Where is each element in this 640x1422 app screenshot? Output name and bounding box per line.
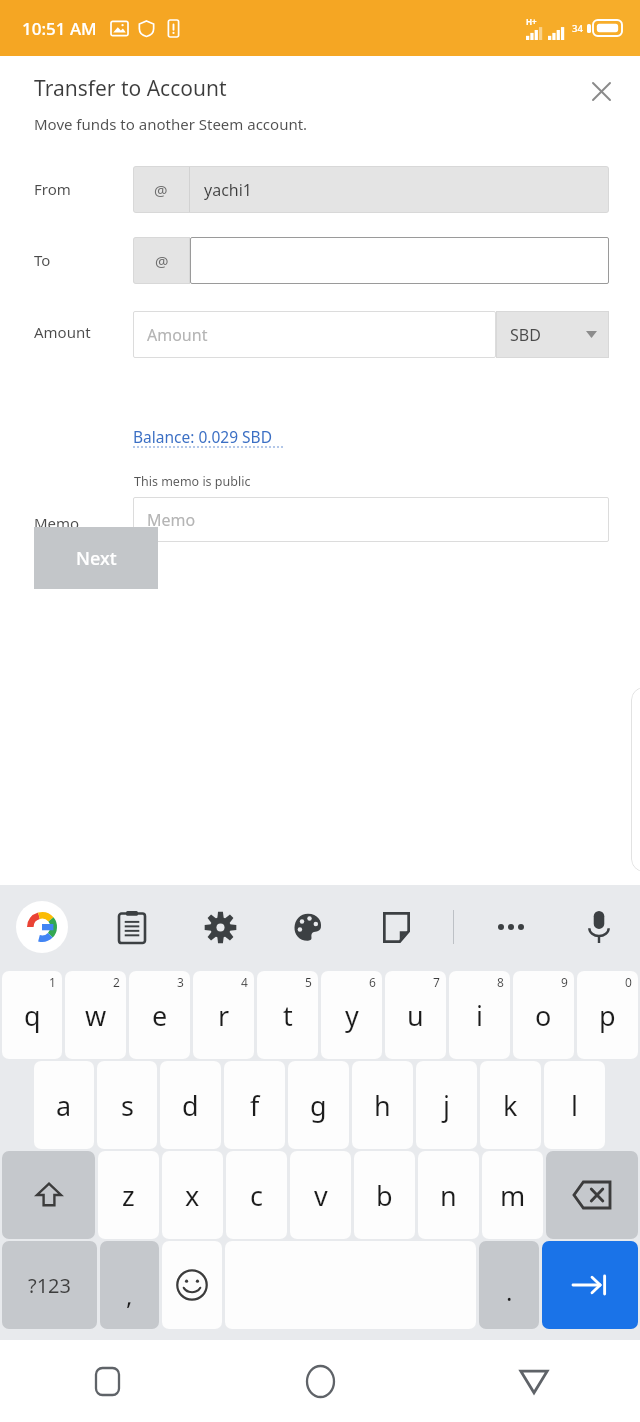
button[interactable]: f [224, 1061, 285, 1149]
staticText: 34 [572, 22, 583, 35]
button[interactable]: Google [16, 901, 68, 953]
button[interactable]: ?123 [2, 1241, 97, 1329]
staticText: f [250, 1087, 260, 1124]
button[interactable]: Amount [133, 311, 496, 358]
button[interactable]: @ [133, 166, 609, 213]
button[interactable]: b [354, 1151, 415, 1239]
button[interactable]: x [162, 1151, 223, 1239]
button[interactable]: Voice input [576, 904, 622, 950]
staticText: ?123 [28, 1272, 71, 1299]
staticText: Memo [34, 513, 80, 533]
button[interactable]: Memo [133, 497, 609, 542]
button[interactable]: Next [34, 527, 158, 589]
button[interactable]: 8 [449, 971, 510, 1059]
staticText: b [376, 1177, 393, 1214]
button[interactable]: n [418, 1151, 479, 1239]
button[interactable]: Recents [0, 1340, 214, 1422]
button[interactable]: 3 [129, 971, 190, 1059]
staticText: 1 [49, 974, 56, 990]
staticText: 34 [572, 22, 583, 35]
staticText: . [506, 1275, 513, 1308]
button[interactable]: k [480, 1061, 541, 1149]
button[interactable]: d [160, 1061, 221, 1149]
button[interactable]: Balance: 0.029 SBD [133, 426, 285, 449]
button[interactable]: h [352, 1061, 413, 1149]
staticText: c [250, 1177, 263, 1214]
button[interactable]: SBD [496, 311, 609, 358]
staticText: Amount [34, 322, 91, 342]
button[interactable]: 5 [257, 971, 318, 1059]
staticText: 2 [113, 974, 120, 990]
staticText: p [599, 997, 616, 1034]
staticText: i [476, 997, 483, 1034]
button[interactable]: Home [214, 1340, 427, 1422]
staticText: yachi1 [204, 179, 252, 201]
staticText: t [283, 997, 293, 1034]
button[interactable]: 6 [321, 971, 382, 1059]
button[interactable]: Themes [285, 904, 331, 950]
staticText: e [152, 997, 168, 1034]
staticText: From [34, 179, 71, 199]
staticText: @ [154, 180, 168, 200]
staticText: q [24, 997, 41, 1034]
button[interactable]: Back [427, 1340, 640, 1422]
button[interactable]: Emoji [162, 1241, 222, 1329]
staticText: 0 [625, 974, 632, 990]
staticText: d [182, 1087, 199, 1124]
staticText: 3 [177, 974, 184, 990]
button[interactable]: More options [488, 904, 534, 950]
button[interactable]: z [98, 1151, 159, 1239]
button[interactable]: 2 [65, 971, 126, 1059]
button[interactable]: g [288, 1061, 349, 1149]
button[interactable]: Handwriting [373, 904, 419, 950]
staticText: k [503, 1087, 518, 1124]
staticText: 7 [433, 974, 440, 990]
staticText: Amount [147, 324, 208, 346]
button[interactable]: Clipboard [109, 904, 155, 950]
staticText: n [440, 1177, 457, 1214]
button[interactable]: Backspace [546, 1151, 638, 1239]
staticText: @ [155, 251, 169, 271]
staticText: r [218, 997, 230, 1034]
staticText: u [407, 997, 424, 1034]
staticText: , [126, 1279, 133, 1312]
button[interactable]: v [290, 1151, 351, 1239]
button[interactable]: l [544, 1061, 605, 1149]
button[interactable]: c [226, 1151, 287, 1239]
staticText: Next [76, 546, 117, 571]
staticText: To [34, 250, 51, 270]
staticText: Transfer to Account [34, 74, 227, 103]
button[interactable]: . [479, 1241, 539, 1329]
staticText: 10:51 AM [22, 17, 97, 40]
button[interactable]: j [416, 1061, 477, 1149]
button[interactable]: 7 [385, 971, 446, 1059]
staticText: H+ [526, 16, 537, 27]
staticText: 6 [369, 974, 376, 990]
staticText: 10:51 AM [22, 17, 97, 40]
button[interactable]: , [100, 1241, 159, 1329]
staticText: Move funds to another Steem account. [34, 114, 308, 134]
staticText: SBD [510, 324, 541, 346]
staticText: o [535, 997, 552, 1034]
button[interactable]: Enter [542, 1241, 638, 1329]
staticText: H+ [526, 16, 537, 27]
button[interactable]: Settings [197, 904, 243, 950]
button[interactable]: 0 [577, 971, 638, 1059]
staticText: Memo [147, 509, 196, 531]
staticText: g [310, 1087, 327, 1124]
button[interactable]: Close [584, 74, 618, 108]
button[interactable]: a [34, 1061, 94, 1149]
staticText: s [121, 1087, 134, 1124]
button[interactable] [190, 237, 609, 284]
button[interactable]: 4 [193, 971, 254, 1059]
button[interactable]: m [482, 1151, 543, 1239]
staticText: y [345, 997, 359, 1034]
button[interactable]: 1 [2, 971, 62, 1059]
staticText: Balance: 0.029 SBD [133, 426, 272, 447]
staticText: l [571, 1087, 578, 1124]
staticText: z [122, 1177, 135, 1214]
button[interactable]: Shift [2, 1151, 95, 1239]
button[interactable]: s [97, 1061, 157, 1149]
button[interactable]: 9 [513, 971, 574, 1059]
